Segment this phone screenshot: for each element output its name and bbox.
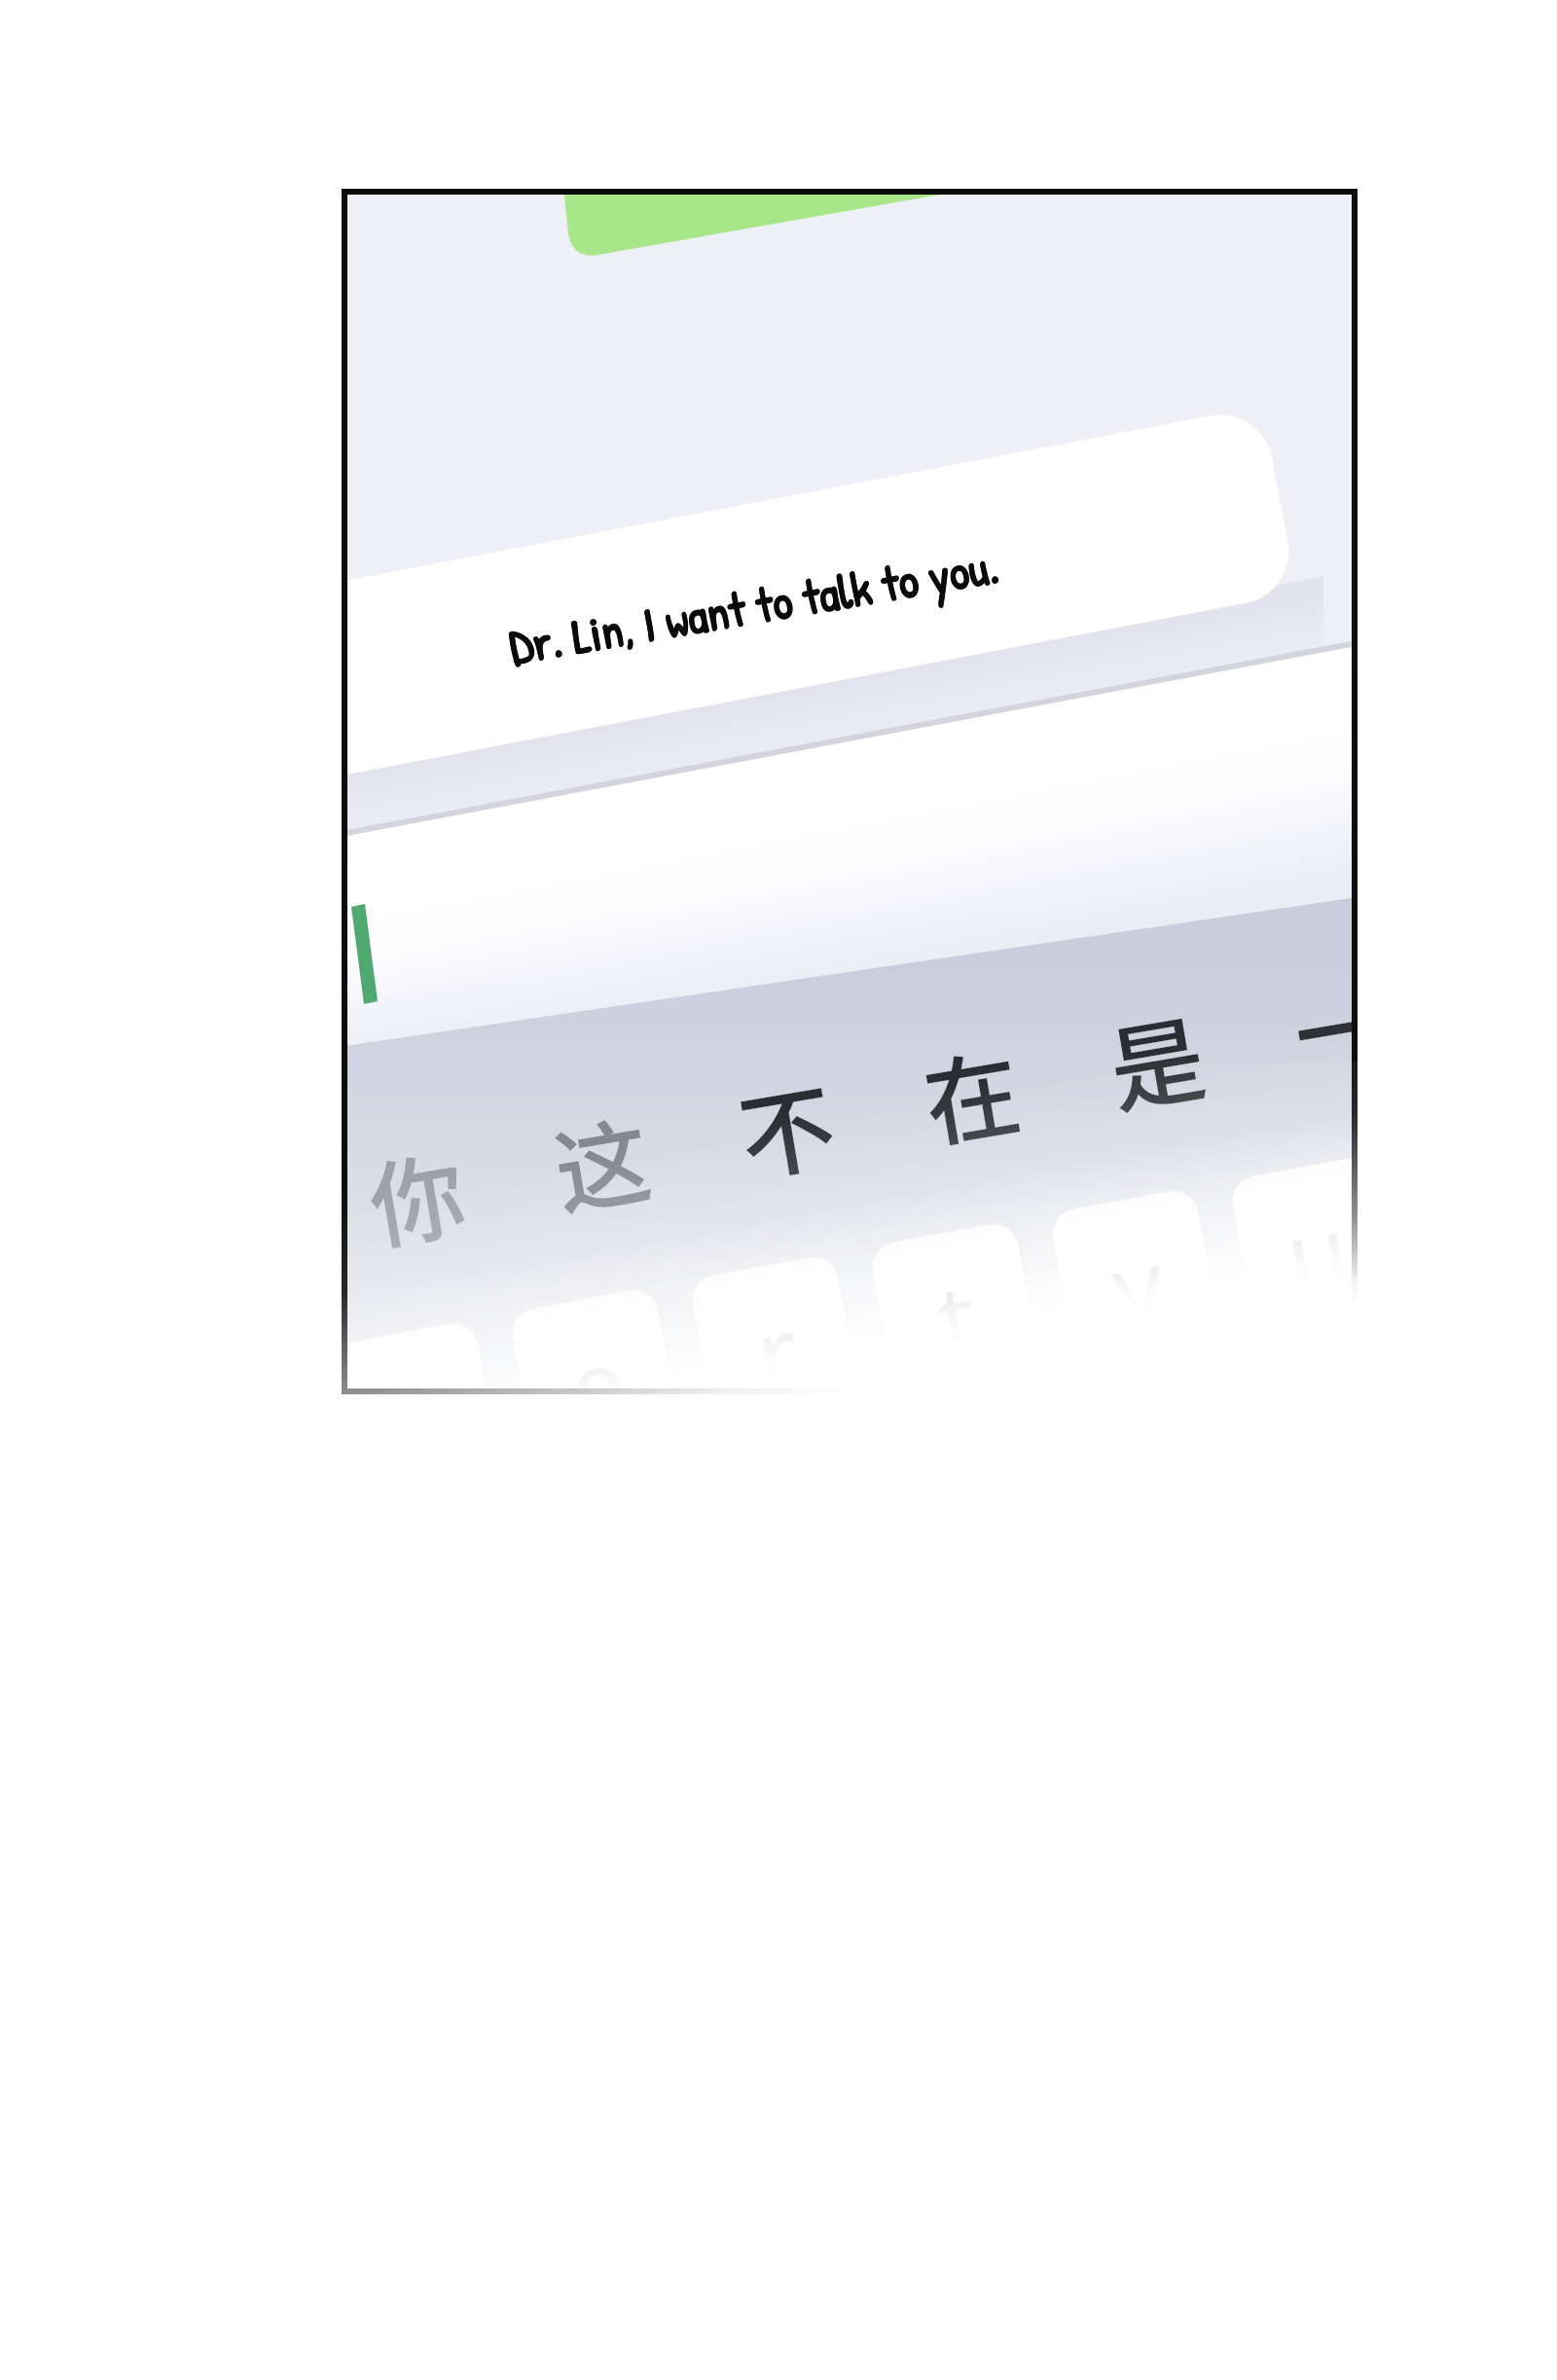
button[interactable] [0,0,1557,2380]
